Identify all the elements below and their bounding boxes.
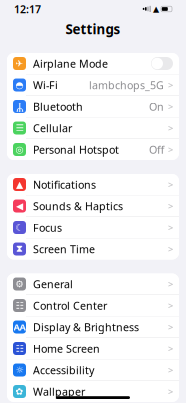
staticText: > (168, 221, 173, 234)
staticText: Screen Time (33, 242, 95, 256)
button[interactable]: ☼ (7, 359, 179, 380)
staticText: Cellular (33, 121, 72, 135)
staticText: Focus (33, 220, 62, 235)
staticText: ⚙ (15, 279, 23, 289)
staticText: ✈ (15, 58, 23, 69)
staticText: > (168, 321, 173, 333)
button[interactable]: ☰ (7, 117, 179, 138)
staticText: > (168, 200, 173, 212)
staticText: ☾ (15, 222, 23, 233)
button[interactable]: ✿ (7, 381, 179, 402)
staticText: > (168, 385, 173, 398)
button[interactable]: ☷ (7, 295, 179, 316)
staticText: ◀ (16, 201, 23, 211)
staticText: Control Center (33, 298, 107, 313)
staticText: ☼ (15, 365, 23, 375)
staticText: ▲ (153, 4, 159, 14)
staticText: Wi-Fi (33, 78, 58, 92)
staticText: Display & Brightness (33, 320, 139, 334)
button[interactable]: ☾ (7, 217, 179, 238)
staticText: Bluetooth (33, 99, 83, 114)
button[interactable]: AA (7, 316, 179, 337)
staticText: ▲ (16, 179, 23, 190)
staticText: > (168, 79, 173, 91)
button[interactable]: ◓ (7, 74, 179, 95)
staticText: lambchops_5G (89, 78, 164, 92)
staticText: Notifications (33, 177, 96, 192)
staticText: > (168, 122, 173, 134)
staticText: Wallpaper (33, 384, 85, 399)
staticText: 12:17 (14, 2, 41, 16)
button[interactable]: ▲ (7, 174, 179, 195)
button[interactable]: ☷ (7, 338, 179, 359)
button[interactable]: ◎ (7, 139, 179, 160)
staticText: Settings (65, 20, 120, 38)
staticText: ☷ (15, 300, 23, 311)
button[interactable]: ✈ (7, 53, 179, 74)
staticText: Accessibility (33, 363, 94, 377)
staticText: > (168, 299, 173, 312)
staticText: AA (13, 321, 25, 333)
staticText: > (168, 143, 173, 156)
staticText: ☷ (15, 343, 23, 354)
staticText: > (168, 342, 173, 355)
staticText: ☰ (15, 123, 23, 133)
staticText: ᛦ (16, 101, 23, 112)
staticText: ◎ (15, 144, 23, 155)
staticText: > (168, 364, 173, 376)
staticText: > (168, 178, 173, 191)
button[interactable]: ◀ (7, 195, 179, 216)
staticText: ⧗ (16, 244, 23, 253)
staticText: ✿ (15, 386, 23, 397)
staticText: > (168, 243, 173, 255)
staticText: Sounds & Haptics (33, 199, 123, 213)
staticText: General (33, 277, 73, 291)
staticText: > (168, 100, 173, 113)
staticText: On (149, 99, 164, 114)
staticText: > (168, 278, 173, 290)
button[interactable]: ⚙ (7, 273, 179, 294)
staticText: Off (149, 142, 164, 157)
staticText: Personal Hotspot (33, 142, 119, 157)
staticText: Home Screen (33, 341, 100, 356)
staticText: Airplane Mode (33, 56, 108, 71)
button[interactable]: ⧗ (7, 238, 179, 259)
staticText: ◓ (15, 80, 23, 90)
button[interactable]: ᛦ (7, 96, 179, 117)
